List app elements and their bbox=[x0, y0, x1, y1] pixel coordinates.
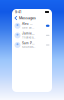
staticText: Jamie Chen bbox=[22, 32, 35, 35]
staticText: Sounds good bbox=[22, 45, 35, 49]
button[interactable]: Back bbox=[14, 16, 17, 20]
staticText: Alex Morgan bbox=[22, 22, 35, 26]
staticText: 9:41 bbox=[15, 10, 21, 14]
staticText: Messages bbox=[19, 16, 36, 20]
button[interactable]: Sam Patel bbox=[12, 40, 52, 50]
button[interactable]: Alex Morgan bbox=[12, 21, 52, 31]
button[interactable]: Jamie Chen bbox=[12, 31, 52, 40]
staticText: See you tomorrow bbox=[22, 26, 35, 29]
staticText: Sam Patel bbox=[22, 41, 35, 45]
staticText: Thanks a lot bbox=[22, 36, 35, 39]
